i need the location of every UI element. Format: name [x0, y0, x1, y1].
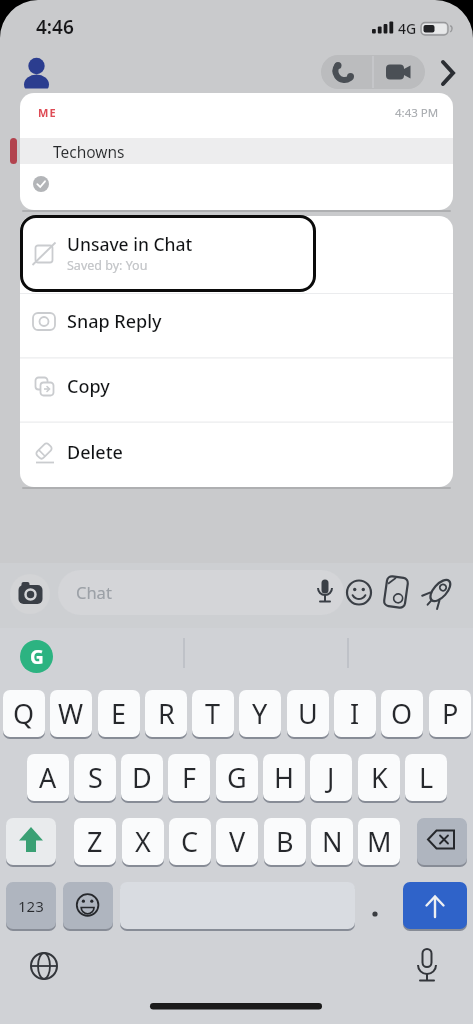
button[interactable]: L [405, 754, 447, 801]
staticText: J [327, 759, 335, 796]
button[interactable] [20, 216, 453, 293]
staticText: Q [13, 695, 35, 732]
staticText: Unsave in Chat [67, 232, 193, 256]
button[interactable]: G [20, 640, 53, 673]
staticText: T [205, 695, 221, 732]
button[interactable]: 123 [6, 882, 56, 929]
button[interactable]: C [169, 818, 211, 865]
button[interactable]: H [263, 754, 305, 801]
staticText: Techowns [53, 141, 125, 162]
button[interactable] [346, 580, 372, 606]
staticText: Y [252, 695, 268, 732]
button[interactable] [373, 55, 425, 89]
button[interactable]: R [145, 690, 187, 737]
button[interactable] [403, 882, 467, 929]
staticText: M [367, 823, 392, 860]
staticText: N [322, 823, 343, 860]
button[interactable]: U [287, 690, 329, 737]
staticText: 4G [398, 19, 417, 38]
staticText: Z [87, 823, 103, 860]
button[interactable]: A [27, 754, 69, 801]
staticText: 123 [18, 896, 44, 916]
staticText: O [391, 695, 413, 732]
staticText: X [135, 823, 151, 860]
button[interactable]: I [334, 690, 376, 737]
button[interactable] [10, 574, 50, 614]
button[interactable] [6, 818, 56, 865]
button[interactable]: S [74, 754, 116, 801]
button[interactable]: O [381, 690, 423, 737]
button[interactable]: G [216, 754, 258, 801]
staticText: W [58, 695, 84, 732]
button[interactable]: Z [74, 818, 116, 865]
button[interactable]: E [98, 690, 140, 737]
staticText: G [227, 759, 247, 796]
button[interactable]: Y [239, 690, 281, 737]
button[interactable] [383, 577, 410, 608]
button[interactable] [436, 56, 464, 88]
staticText: 4:46 [36, 14, 74, 40]
staticText: V [229, 823, 246, 860]
staticText: G [30, 644, 44, 670]
button[interactable]: M [358, 818, 400, 865]
button[interactable]: P [429, 690, 471, 737]
button[interactable] [30, 952, 58, 980]
staticText: D [132, 759, 152, 796]
button[interactable]: X [122, 818, 164, 865]
staticText: L [419, 759, 434, 796]
button[interactable]: V [216, 818, 258, 865]
staticText: Delete [67, 440, 123, 465]
staticText: K [371, 759, 388, 796]
staticText: U [298, 695, 318, 732]
staticText: S [88, 759, 103, 796]
button[interactable] [20, 357, 453, 422]
staticText: C [181, 823, 199, 860]
staticText: P [442, 695, 459, 732]
button[interactable] [413, 948, 441, 982]
button[interactable]: Q [3, 690, 45, 737]
button[interactable]: F [168, 754, 210, 801]
button[interactable]: B [264, 818, 306, 865]
staticText: H [274, 759, 295, 796]
button[interactable]: T [192, 690, 234, 737]
staticText: Copy [67, 374, 110, 399]
button[interactable]: K [358, 754, 400, 801]
button[interactable]: D [121, 754, 163, 801]
staticText: Snap Reply [67, 309, 162, 334]
staticText: B [276, 823, 294, 860]
staticText: E [111, 695, 127, 732]
staticText: ME [38, 105, 57, 120]
button[interactable] [63, 882, 113, 929]
button[interactable]: N [311, 818, 353, 865]
staticText: Saved by: You [67, 257, 148, 274]
button[interactable] [58, 570, 344, 615]
button[interactable]: J [310, 754, 352, 801]
staticText: Chat [76, 581, 112, 603]
button[interactable]: W [50, 690, 92, 737]
button[interactable] [424, 577, 455, 608]
button[interactable] [20, 422, 453, 487]
button[interactable] [417, 818, 467, 865]
staticText: I [350, 695, 360, 732]
button[interactable] [321, 55, 373, 89]
button[interactable] [20, 293, 453, 357]
staticText: F [182, 759, 197, 796]
staticText: 4:43 PM [395, 105, 439, 121]
staticText: R [158, 695, 175, 732]
staticText: A [39, 759, 57, 796]
